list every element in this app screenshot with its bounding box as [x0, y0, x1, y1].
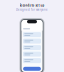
staticText: Designed for everyone: [16, 8, 48, 11]
button[interactable]: List item: [23, 45, 41, 50]
button[interactable]: List item: [23, 39, 41, 44]
button[interactable]: List item: [23, 58, 41, 63]
staticText: Seconds to set up: [19, 4, 44, 7]
button[interactable]: List item: [23, 32, 41, 37]
button[interactable]: List item: [23, 52, 41, 57]
button[interactable]: Get started: [21, 67, 42, 72]
